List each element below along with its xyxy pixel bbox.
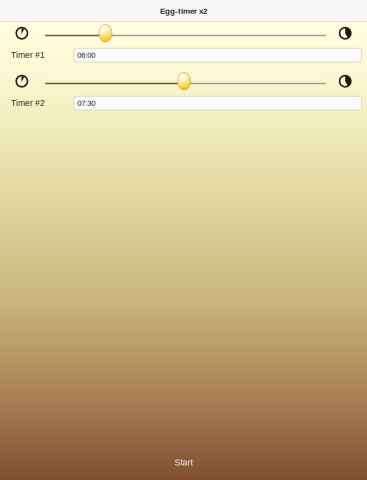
button[interactable]: Maximum time	[335, 71, 356, 92]
button[interactable]: Maximum time	[335, 23, 356, 44]
button[interactable]: 06:00	[74, 48, 361, 62]
staticText: 07:30	[77, 99, 95, 107]
button[interactable]: Minimum time	[11, 71, 32, 92]
staticText: 06:00	[77, 51, 95, 59]
staticText: Start	[174, 458, 192, 467]
button[interactable]: Minimum time	[11, 23, 32, 44]
button[interactable]: Timer duration	[45, 24, 326, 42]
staticText: Timer #2	[11, 98, 45, 108]
button[interactable]: Start	[123, 453, 243, 471]
button[interactable]: Timer duration	[45, 72, 326, 90]
staticText: Egg-timer x2	[160, 6, 207, 15]
staticText: Timer #1	[11, 50, 45, 60]
button[interactable]: 07:30	[74, 96, 361, 110]
